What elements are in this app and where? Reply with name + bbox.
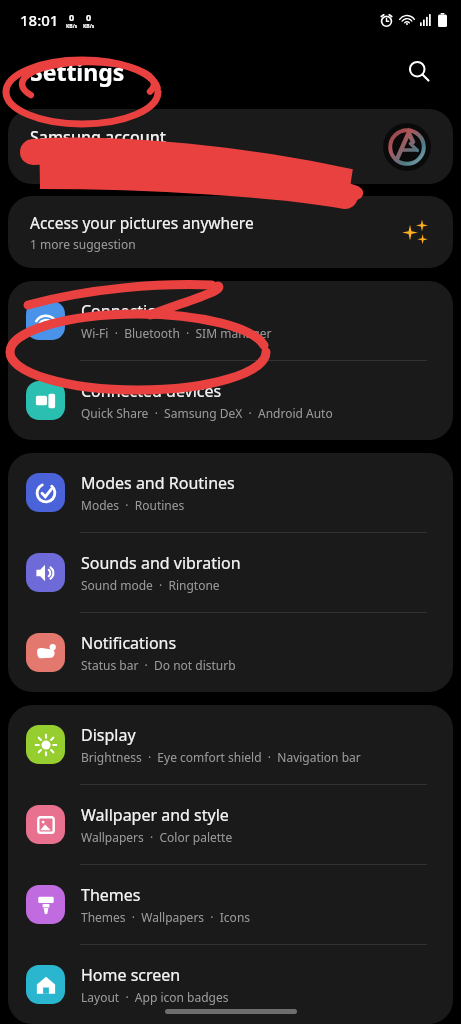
staticText: Layout · App icon badges bbox=[81, 989, 229, 1005]
button[interactable]: Wallpaper and style bbox=[8, 785, 453, 864]
staticText: Quick Share · Samsung DeX · Android Auto bbox=[81, 405, 333, 421]
staticText: Access your pictures anywhere bbox=[30, 212, 254, 233]
staticText: Wallpapers · Color palette bbox=[81, 829, 233, 845]
button[interactable]: Connected devices bbox=[8, 361, 453, 440]
staticText: Samsung Cloud, Find My Mobile and more bbox=[30, 151, 269, 167]
staticText: Themes · Wallpapers · Icons bbox=[81, 909, 251, 925]
button[interactable]: Display bbox=[8, 705, 453, 784]
staticText: 1 more suggestion bbox=[30, 236, 136, 252]
staticText: Themes bbox=[81, 884, 141, 906]
staticText: Wi-Fi · Bluetooth · SIM manager bbox=[81, 325, 272, 341]
button[interactable]: Home screen bbox=[8, 945, 453, 1024]
staticText: Modes · Routines bbox=[81, 497, 185, 513]
staticText: Samsung account bbox=[30, 126, 166, 148]
staticText: Sound mode · Ringtone bbox=[81, 577, 220, 593]
button[interactable]: Samsung account bbox=[8, 109, 453, 184]
button[interactable]: Modes and Routines bbox=[8, 453, 453, 532]
staticText: Modes and Routines bbox=[81, 472, 235, 494]
button[interactable]: Search bbox=[399, 51, 439, 91]
staticText: Notifications bbox=[81, 632, 177, 654]
staticText: Brightness · Eye comfort shield · Naviga… bbox=[81, 749, 361, 765]
staticText: Sounds and vibration bbox=[81, 552, 241, 574]
button[interactable]: Connections bbox=[8, 281, 453, 360]
staticText: Connections bbox=[81, 300, 175, 322]
staticText: 0 bbox=[86, 11, 92, 23]
staticText: 18:01 bbox=[20, 10, 59, 30]
staticText: Status bar · Do not disturb bbox=[81, 657, 236, 673]
button[interactable]: Notifications bbox=[8, 613, 453, 692]
staticText: Connected devices bbox=[81, 380, 222, 402]
staticText: 0 bbox=[69, 11, 75, 23]
button[interactable]: Themes bbox=[8, 865, 453, 944]
staticText: Settings bbox=[30, 56, 125, 87]
staticText: Wallpaper and style bbox=[81, 804, 229, 826]
staticText: KB/s bbox=[66, 23, 78, 30]
staticText: Home screen bbox=[81, 964, 181, 986]
button[interactable]: Access your pictures anywhere bbox=[8, 196, 453, 268]
staticText: Display bbox=[81, 724, 136, 746]
staticText: KB/s bbox=[83, 23, 95, 30]
button[interactable]: Sounds and vibration bbox=[8, 533, 453, 612]
